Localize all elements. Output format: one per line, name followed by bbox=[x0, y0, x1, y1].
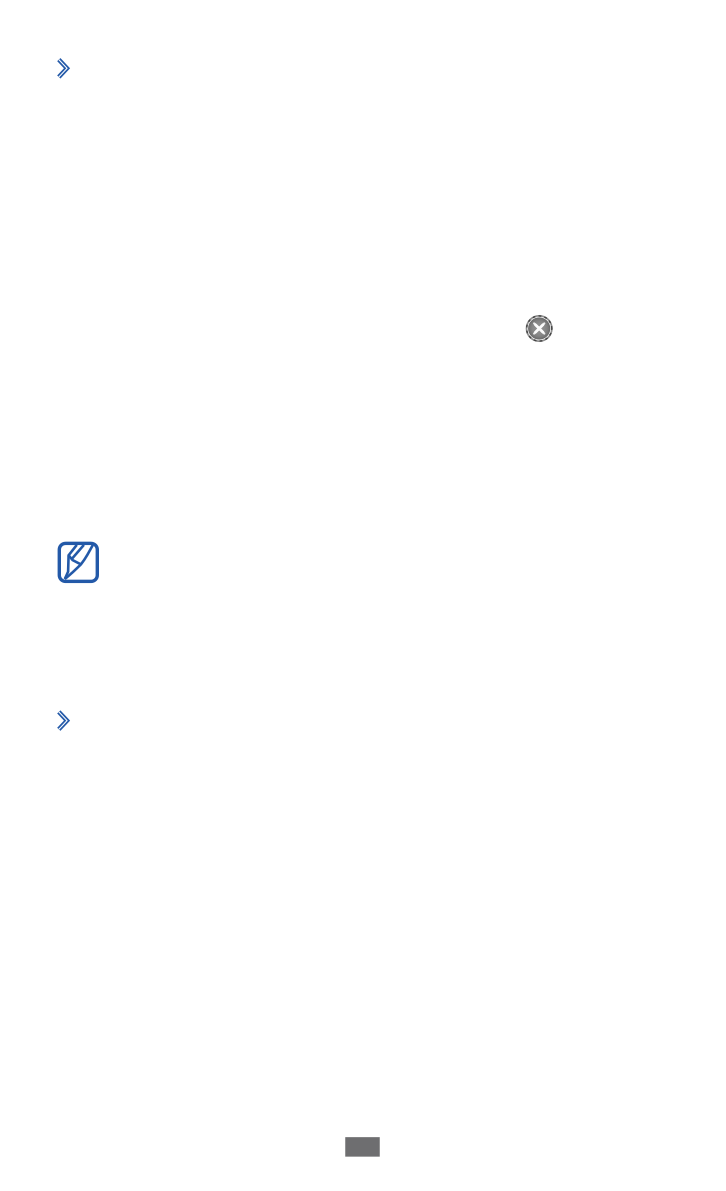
button[interactable]: Next step bbox=[57, 710, 71, 731]
button[interactable]: Close bbox=[526, 315, 553, 342]
button[interactable]: Memo bbox=[58, 542, 99, 583]
button[interactable]: Next step bbox=[57, 58, 71, 79]
